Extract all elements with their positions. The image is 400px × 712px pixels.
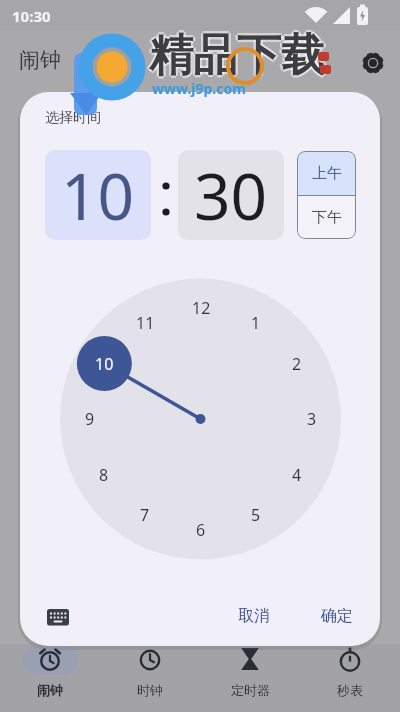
staticText: 11	[136, 312, 155, 334]
staticText: 7	[140, 504, 150, 526]
staticText: 选择时间	[45, 109, 101, 127]
staticText: 定时器	[231, 682, 270, 698]
staticText: 精品下载	[147, 28, 323, 83]
staticText: 时钟	[137, 682, 163, 698]
staticText: 下午	[312, 208, 342, 227]
staticText: 2	[292, 353, 302, 375]
staticText: 精品下载	[149, 26, 325, 81]
button[interactable]: 下午	[297, 196, 356, 239]
staticText: 8	[99, 464, 109, 486]
staticText: 精品下载	[149, 30, 325, 85]
staticText: 4	[292, 464, 302, 486]
staticText: 6	[196, 519, 206, 541]
staticText: 精品下载	[149, 28, 325, 83]
button[interactable]	[361, 51, 385, 75]
button[interactable]: 取消	[238, 606, 270, 626]
staticText: 10	[61, 152, 135, 239]
staticText: 3	[307, 408, 317, 430]
staticText: 10	[95, 353, 114, 375]
staticText: 上午	[312, 164, 342, 183]
staticText: 5	[251, 504, 261, 526]
staticText: 闹钟	[19, 47, 61, 73]
button[interactable]: 确定	[321, 606, 353, 626]
staticText: 秒表	[337, 682, 363, 698]
button[interactable]: 10	[45, 150, 151, 240]
staticText: 9	[85, 408, 95, 430]
staticText: 1	[251, 312, 261, 334]
staticText: 精品下载	[151, 28, 327, 83]
button[interactable]: 定时器	[200, 646, 300, 712]
staticText: 闹钟	[37, 682, 63, 698]
staticText: 12	[192, 297, 211, 319]
button[interactable]: 时钟	[100, 646, 200, 712]
button[interactable]: 30	[178, 150, 284, 240]
staticText: 30	[194, 152, 268, 239]
button[interactable]: 上午	[297, 151, 356, 195]
staticText: www.j9p.com	[152, 79, 246, 98]
button[interactable]: 秒表	[300, 646, 400, 712]
staticText: 10:30	[12, 6, 51, 26]
button[interactable]: 闹钟	[0, 646, 100, 712]
button[interactable]	[47, 609, 69, 626]
